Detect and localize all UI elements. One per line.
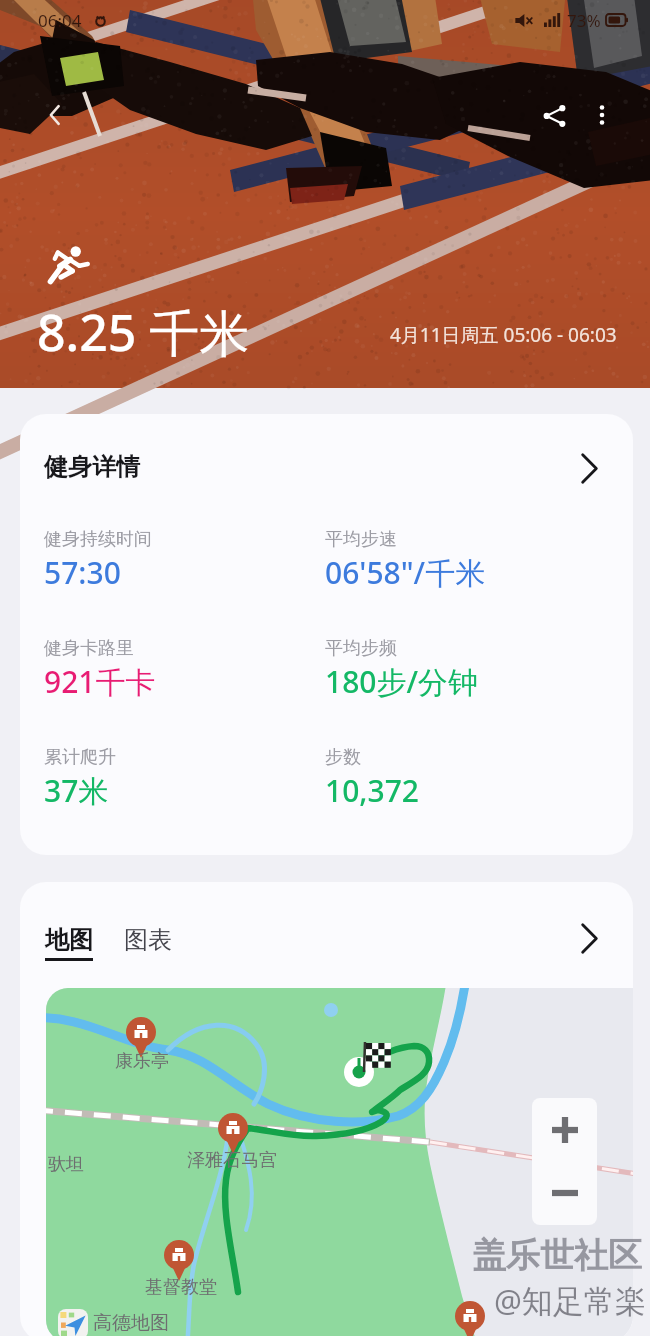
staticText: 06'58"/千米	[325, 552, 486, 593]
staticText: 和坑	[556, 1180, 590, 1201]
button[interactable]: Back	[31, 91, 79, 139]
staticText: 73%	[567, 9, 601, 32]
staticText: 921千卡	[44, 661, 156, 702]
button[interactable]: More options	[578, 91, 626, 139]
staticText: 健身详情	[44, 452, 140, 482]
staticText: 37米	[44, 770, 109, 811]
staticText: 8.25 千米	[37, 298, 250, 366]
staticText: 健身卡路里	[44, 637, 134, 660]
staticText: 图表	[124, 925, 172, 955]
staticText: @知足常楽	[494, 1279, 646, 1321]
button[interactable]: 图表	[123, 925, 173, 955]
staticText: 驮坦	[48, 1153, 84, 1176]
button[interactable]: Share	[530, 91, 578, 139]
staticText: 平均步速	[325, 528, 397, 551]
staticText: 10,372	[325, 770, 419, 811]
staticText: 180步/分钟	[325, 661, 479, 702]
staticText: 地图	[45, 925, 93, 955]
button[interactable]: Zoom in	[532, 1098, 597, 1161]
staticText: 高德地图	[93, 1311, 169, 1335]
button[interactable]: 健身详情	[20, 414, 633, 520]
staticText: 基督教堂	[145, 1276, 217, 1299]
staticText: 平均步频	[325, 637, 397, 660]
staticText: 4月11日周五 05:06 - 06:03	[390, 322, 617, 348]
staticText: 泽雅石马宫	[187, 1149, 277, 1172]
staticText: 盖乐世社区	[472, 1234, 642, 1277]
button[interactable]: Open map	[573, 917, 606, 960]
staticText: 累计爬升	[44, 746, 116, 769]
button[interactable]: 地图	[44, 925, 94, 961]
staticText: 06:04	[38, 9, 82, 32]
staticText: 57:30	[44, 552, 121, 593]
button[interactable]: Zoom out	[532, 1161, 597, 1225]
staticText: 健身持续时间	[44, 528, 152, 551]
staticText: 康乐亭	[115, 1050, 169, 1073]
staticText: 步数	[325, 746, 361, 769]
